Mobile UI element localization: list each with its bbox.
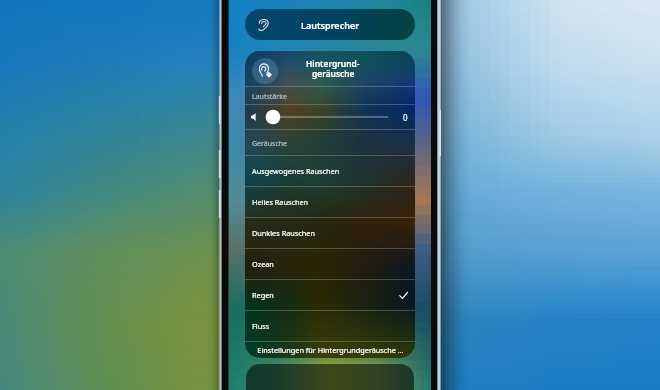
button[interactable]: Fluss xyxy=(245,311,415,341)
staticText: Einstellungen für Hintergrundgeräusche … xyxy=(257,345,404,355)
staticText: 0 xyxy=(403,112,408,123)
button[interactable]: Einstellungen für Hintergrundgeräusche … xyxy=(245,342,415,358)
staticText: Regen xyxy=(252,290,274,300)
button[interactable]: Regen xyxy=(245,280,415,310)
staticText: Lautstärke xyxy=(252,92,287,102)
button[interactable]: Lautsprecher xyxy=(245,9,415,40)
button[interactable]: Helles Rauschen xyxy=(245,187,415,217)
button[interactable]: Dunkles Rauschen xyxy=(245,218,415,248)
staticText: Fluss xyxy=(252,321,270,331)
other: Hearing device xyxy=(257,18,270,31)
staticText: geräusche xyxy=(312,68,355,79)
staticText: Lautsprecher xyxy=(301,19,360,31)
staticText: Ausgewogenes Rauschen xyxy=(252,166,340,176)
staticText: Ozean xyxy=(252,259,274,269)
button[interactable]: Ausgewogenes Rauschen xyxy=(245,156,415,186)
other: Background sounds xyxy=(258,63,272,77)
staticText: Hintergrund- xyxy=(306,58,360,69)
staticText: Dunkles Rauschen xyxy=(252,228,315,238)
button[interactable] xyxy=(246,364,414,390)
button[interactable]: Ozean xyxy=(245,249,415,279)
staticText: Helles Rauschen xyxy=(252,197,309,207)
button[interactable]: Background sounds xyxy=(245,51,415,86)
staticText: Geräusche xyxy=(252,139,288,149)
